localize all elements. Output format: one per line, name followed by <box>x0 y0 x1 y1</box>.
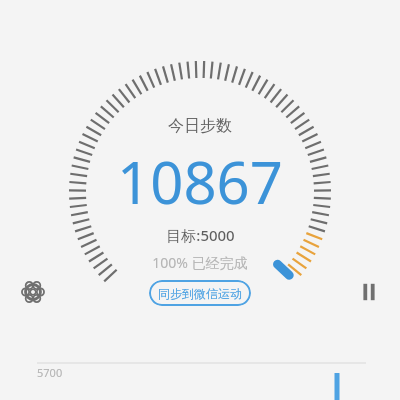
button[interactable]: 同步到微信运动 <box>149 280 251 306</box>
button[interactable]: Settings <box>13 272 53 312</box>
button[interactable]: Pause <box>349 272 389 312</box>
staticText: 今日步数 <box>168 116 232 136</box>
staticText: 100% 已经完成 <box>152 253 248 272</box>
staticText: 10867 <box>117 142 283 221</box>
staticText: 目标:5000 <box>166 225 235 245</box>
staticText: 同步到微信运动 <box>158 286 242 301</box>
staticText: 5700 <box>37 365 63 380</box>
